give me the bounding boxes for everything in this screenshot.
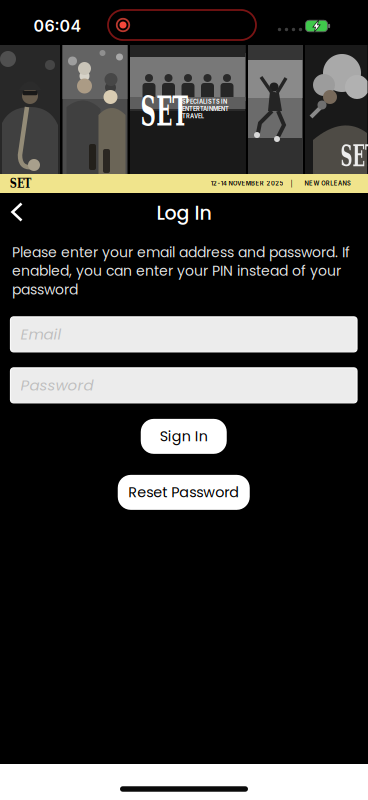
staticText: Password: [20, 375, 93, 396]
staticText: SET: [326, 139, 368, 173]
staticText: 06:04: [33, 16, 81, 36]
button[interactable]: Password: [10, 368, 357, 403]
staticText: Please enter your email address and pass…: [12, 243, 350, 299]
staticText: TRAVEL: [182, 113, 204, 120]
staticText: Reset Password: [128, 482, 239, 502]
button[interactable]: Email: [10, 317, 357, 352]
staticText: NEW ORLEANS: [304, 180, 351, 187]
button[interactable]: Reset Password: [118, 475, 250, 510]
staticText: 12-14 NOVEMBER 2025: [211, 180, 283, 187]
staticText: SET: [118, 87, 210, 135]
staticText: |: [290, 180, 292, 187]
button[interactable]: [0, 196, 34, 230]
staticText: Email: [20, 324, 61, 345]
staticText: SPECIALISTS IN: [182, 98, 227, 105]
staticText: Log In: [156, 200, 211, 226]
staticText: Sign In: [160, 426, 208, 446]
staticText: SET: [7, 176, 34, 191]
button[interactable]: Sign In: [141, 419, 227, 454]
staticText: ENTERTAINMENT: [182, 106, 229, 112]
